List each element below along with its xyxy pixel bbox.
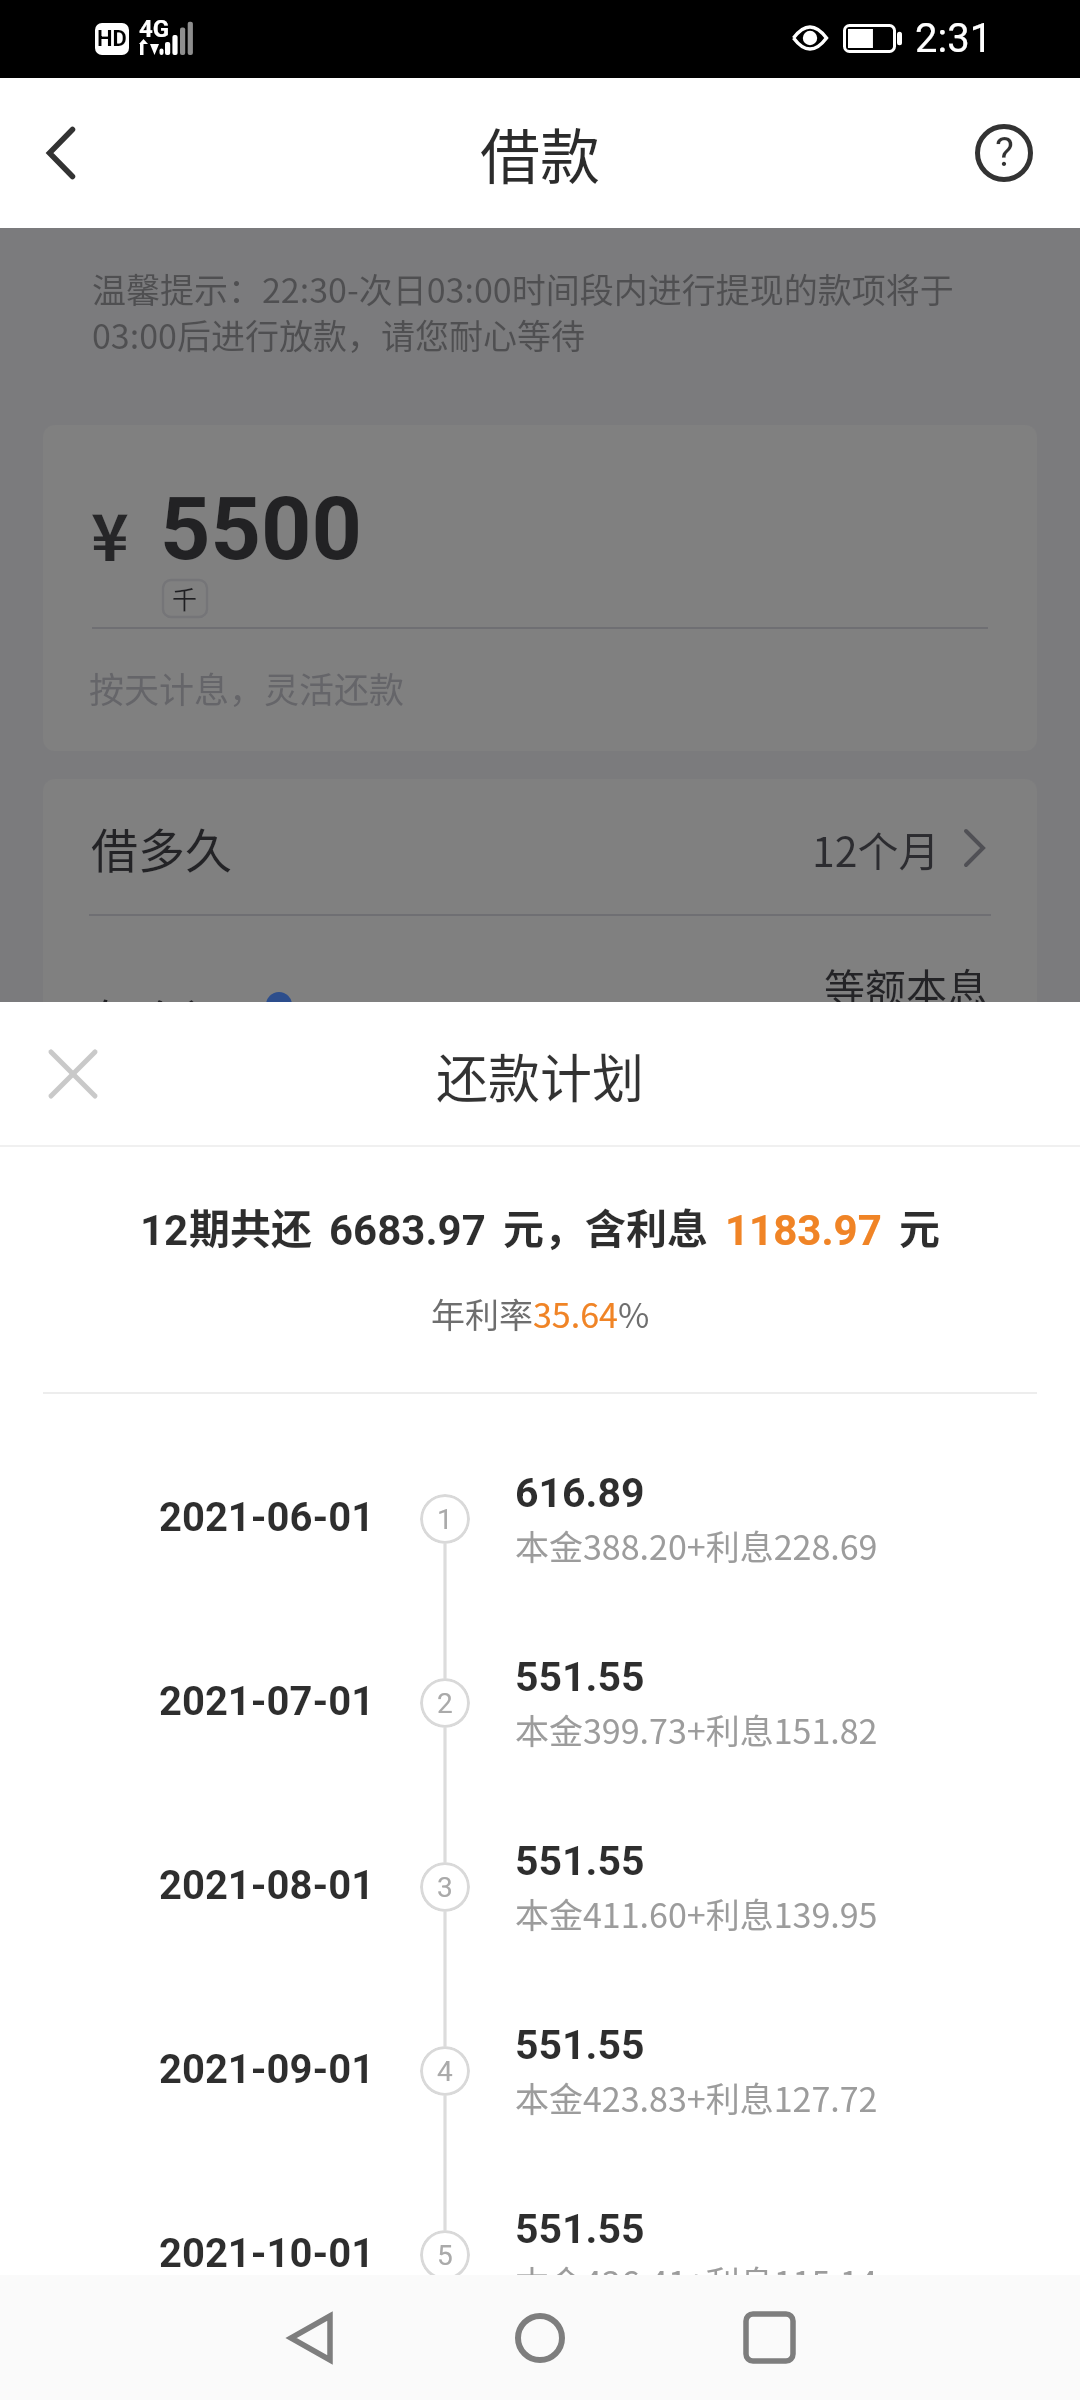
staticText: 期共还	[189, 1196, 312, 1255]
staticText: 4G	[139, 15, 170, 43]
button[interactable]: Back	[0, 78, 120, 228]
button[interactable]: Help	[944, 78, 1064, 228]
staticText: 本金411.60+利息139.95	[515, 1889, 878, 1938]
staticText: 千	[172, 580, 198, 616]
staticText: 本金388.20+利息228.69	[515, 1521, 878, 1570]
button[interactable]	[0, 1979, 1080, 2163]
staticText: 2021-09-01	[159, 2046, 375, 2093]
staticText: 怎么还	[91, 984, 232, 1002]
staticText: 6683.97	[329, 1206, 486, 1255]
button[interactable]: Home	[470, 2275, 610, 2400]
button[interactable]: Recent apps	[699, 2275, 839, 2400]
staticText: 本金436.41+利息115.14	[515, 2257, 878, 2275]
staticText: 借款	[480, 109, 600, 196]
staticText: 3	[437, 1871, 453, 1904]
staticText: 551.55	[515, 2205, 645, 2253]
staticText: 616.89	[515, 1469, 645, 1517]
staticText: 温馨提示：22:30-次日03:00时间段内进行提现的款项将于	[92, 264, 954, 313]
staticText: 1183.97	[725, 1206, 882, 1255]
staticText: 2021-08-01	[159, 1862, 375, 1909]
staticText: 4	[437, 2055, 453, 2088]
staticText: 2021-07-01	[159, 1678, 375, 1725]
staticText: 12个月	[812, 819, 940, 878]
staticText: 本金399.73+利息151.82	[515, 1705, 878, 1754]
staticText: ¥	[91, 487, 129, 580]
staticText: 等额本息	[824, 956, 988, 1002]
staticText: 1	[437, 1503, 453, 1536]
staticText: 元	[899, 1196, 940, 1255]
staticText: 2021-10-01	[159, 2230, 375, 2275]
staticText: 元，含利息	[503, 1196, 708, 1255]
staticText: 借多久	[91, 813, 232, 881]
staticText: 5500	[160, 477, 362, 580]
staticText: 还款计划	[436, 1038, 645, 1113]
staticText: 551.55	[515, 2021, 645, 2069]
button[interactable]	[0, 1795, 1080, 1979]
staticText: 本金423.83+利息127.72	[515, 2073, 878, 2122]
staticText: 03:00后进行放款，请您耐心等待	[92, 310, 585, 359]
staticText: 551.55	[515, 1653, 645, 1701]
button[interactable]: Back	[238, 2275, 378, 2400]
staticText: 35.64	[533, 1289, 618, 1338]
staticText: 2	[437, 1687, 453, 1720]
staticText: 2:31	[915, 15, 993, 62]
staticText: HD	[97, 26, 127, 52]
button[interactable]	[0, 2163, 1080, 2275]
button[interactable]	[0, 1427, 1080, 1611]
staticText: %	[618, 1289, 650, 1338]
button[interactable]: Close	[24, 1026, 118, 1120]
staticText: 551.55	[515, 1837, 645, 1885]
button[interactable]	[0, 1611, 1080, 1795]
button[interactable]	[43, 779, 1037, 914]
staticText: ?	[995, 129, 1014, 176]
staticText: 2021-06-01	[159, 1494, 375, 1541]
button[interactable]	[43, 916, 1037, 1002]
staticText: 12	[140, 1206, 189, 1255]
staticText: 按天计息，灵活还款	[89, 662, 405, 713]
staticText: 年利率	[431, 1289, 533, 1338]
staticText: 5	[437, 2239, 453, 2272]
